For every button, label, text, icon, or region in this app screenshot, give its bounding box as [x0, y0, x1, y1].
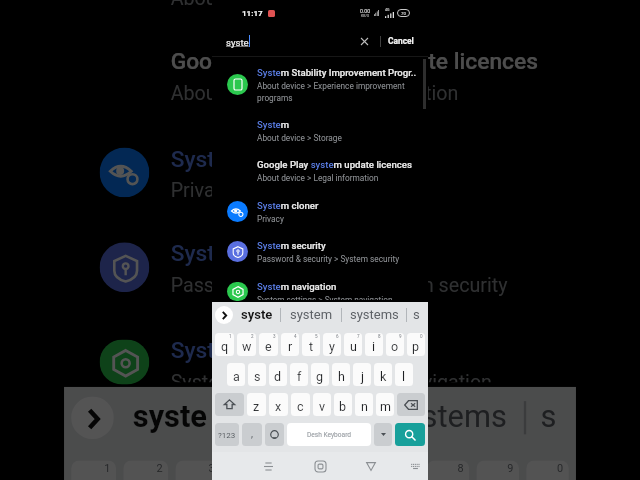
button[interactable]: 0 [407, 333, 425, 356]
button[interactable]: 7 [377, 460, 420, 480]
button[interactable]: 2 [123, 460, 168, 480]
button[interactable]: h [332, 363, 350, 386]
button[interactable]: System [212, 116, 428, 156]
button[interactable]: 3 [259, 333, 278, 356]
staticText: 0 [420, 334, 423, 339]
button[interactable]: 6 [327, 460, 370, 480]
staticText: s [540, 399, 557, 434]
button[interactable]: 5 [302, 333, 320, 356]
button[interactable]: v [313, 393, 331, 416]
button[interactable]: x [269, 393, 288, 416]
button[interactable]: Google Play system update licences [212, 156, 428, 196]
button[interactable]: Hide keyboard [402, 453, 428, 479]
staticText: b [339, 399, 347, 414]
button[interactable]: Clear search [356, 33, 372, 49]
staticText: Google Play system update licences [257, 159, 412, 170]
button[interactable]: Comma [242, 423, 262, 446]
button[interactable]: ?123 [215, 423, 239, 446]
button[interactable]: k [374, 363, 392, 386]
button[interactable]: 9 [476, 460, 519, 480]
button[interactable]: systems [391, 399, 507, 434]
staticText: syste [133, 399, 209, 434]
staticText: u [350, 339, 357, 354]
button[interactable]: More suggestions [215, 306, 233, 324]
button[interactable]: System cloner [212, 197, 428, 237]
staticText: d [274, 369, 282, 384]
staticText: system [290, 307, 333, 322]
button[interactable]: Backspace [397, 393, 425, 416]
button[interactable]: 4 [228, 460, 270, 480]
button[interactable]: System [64, 0, 576, 41]
button[interactable]: More suggestions [71, 396, 114, 439]
staticText: 5 [308, 463, 315, 475]
staticText: 2 [251, 334, 254, 339]
button[interactable]: Search [395, 423, 425, 446]
button[interactable]: Back [358, 453, 384, 479]
button[interactable]: syste [241, 307, 273, 322]
button[interactable]: 7 [344, 333, 362, 356]
button[interactable]: Shift [215, 393, 244, 416]
staticText: syste [241, 307, 273, 322]
button[interactable]: j [353, 363, 371, 386]
staticText: 8 [457, 463, 465, 475]
button[interactable]: 4 [281, 333, 299, 356]
button[interactable]: 5 [277, 460, 320, 480]
staticText: 0 [557, 463, 564, 475]
staticText: 11:17 [242, 9, 263, 18]
button[interactable]: System security [212, 237, 428, 277]
button[interactable]: f [290, 363, 308, 386]
staticText: f [297, 369, 302, 384]
button[interactable]: 9 [386, 333, 404, 356]
staticText: System cloner [257, 200, 319, 211]
staticText: k [380, 369, 387, 384]
button[interactable]: syste [133, 399, 209, 434]
button[interactable]: 8 [365, 333, 383, 356]
button[interactable]: Google Play system update licences [64, 41, 576, 136]
button[interactable]: 3 [175, 460, 220, 480]
button[interactable]: System navigation [212, 278, 428, 297]
button[interactable]: syste [226, 36, 250, 48]
staticText: a [233, 369, 240, 384]
button[interactable]: s [248, 363, 266, 386]
staticText: Privacy [257, 214, 284, 224]
button[interactable]: 8 [427, 460, 469, 480]
button[interactable]: System cloner [64, 138, 576, 233]
button[interactable]: g [311, 363, 329, 386]
button[interactable]: z [247, 393, 266, 416]
button[interactable]: n [355, 393, 373, 416]
staticText: 9 [399, 334, 402, 339]
button[interactable]: m [376, 393, 394, 416]
button[interactable]: Emoji [265, 423, 284, 446]
button[interactable]: b [334, 393, 352, 416]
button[interactable]: 1 [71, 460, 116, 480]
button[interactable]: 6 [323, 333, 341, 356]
staticText: s [413, 307, 420, 322]
staticText: systems [350, 307, 399, 322]
staticText: About device > Storage [257, 133, 342, 143]
button[interactable]: 0 [526, 460, 569, 480]
button[interactable]: system [290, 307, 333, 322]
button[interactable]: a [227, 363, 245, 386]
button[interactable]: Cancel [385, 32, 417, 50]
staticText: System security [171, 240, 334, 266]
button[interactable]: systems [350, 307, 399, 322]
button[interactable]: Recents [255, 453, 281, 479]
button[interactable]: 1 [215, 333, 234, 356]
button[interactable]: Period [374, 423, 392, 446]
staticText: o [391, 339, 399, 354]
button[interactable]: System navigation [64, 330, 576, 375]
button[interactable]: l [395, 363, 413, 386]
button[interactable]: Home [307, 453, 333, 479]
button[interactable]: 2 [237, 333, 256, 356]
button[interactable]: System security [64, 233, 576, 328]
button[interactable]: c [291, 393, 310, 416]
button[interactable]: d [269, 363, 287, 386]
button[interactable]: Desh Keyboard [287, 423, 371, 446]
button[interactable]: system [249, 399, 351, 434]
button[interactable]: System Stability Improvement Progr.. [212, 64, 428, 114]
staticText: 5 [315, 334, 318, 339]
